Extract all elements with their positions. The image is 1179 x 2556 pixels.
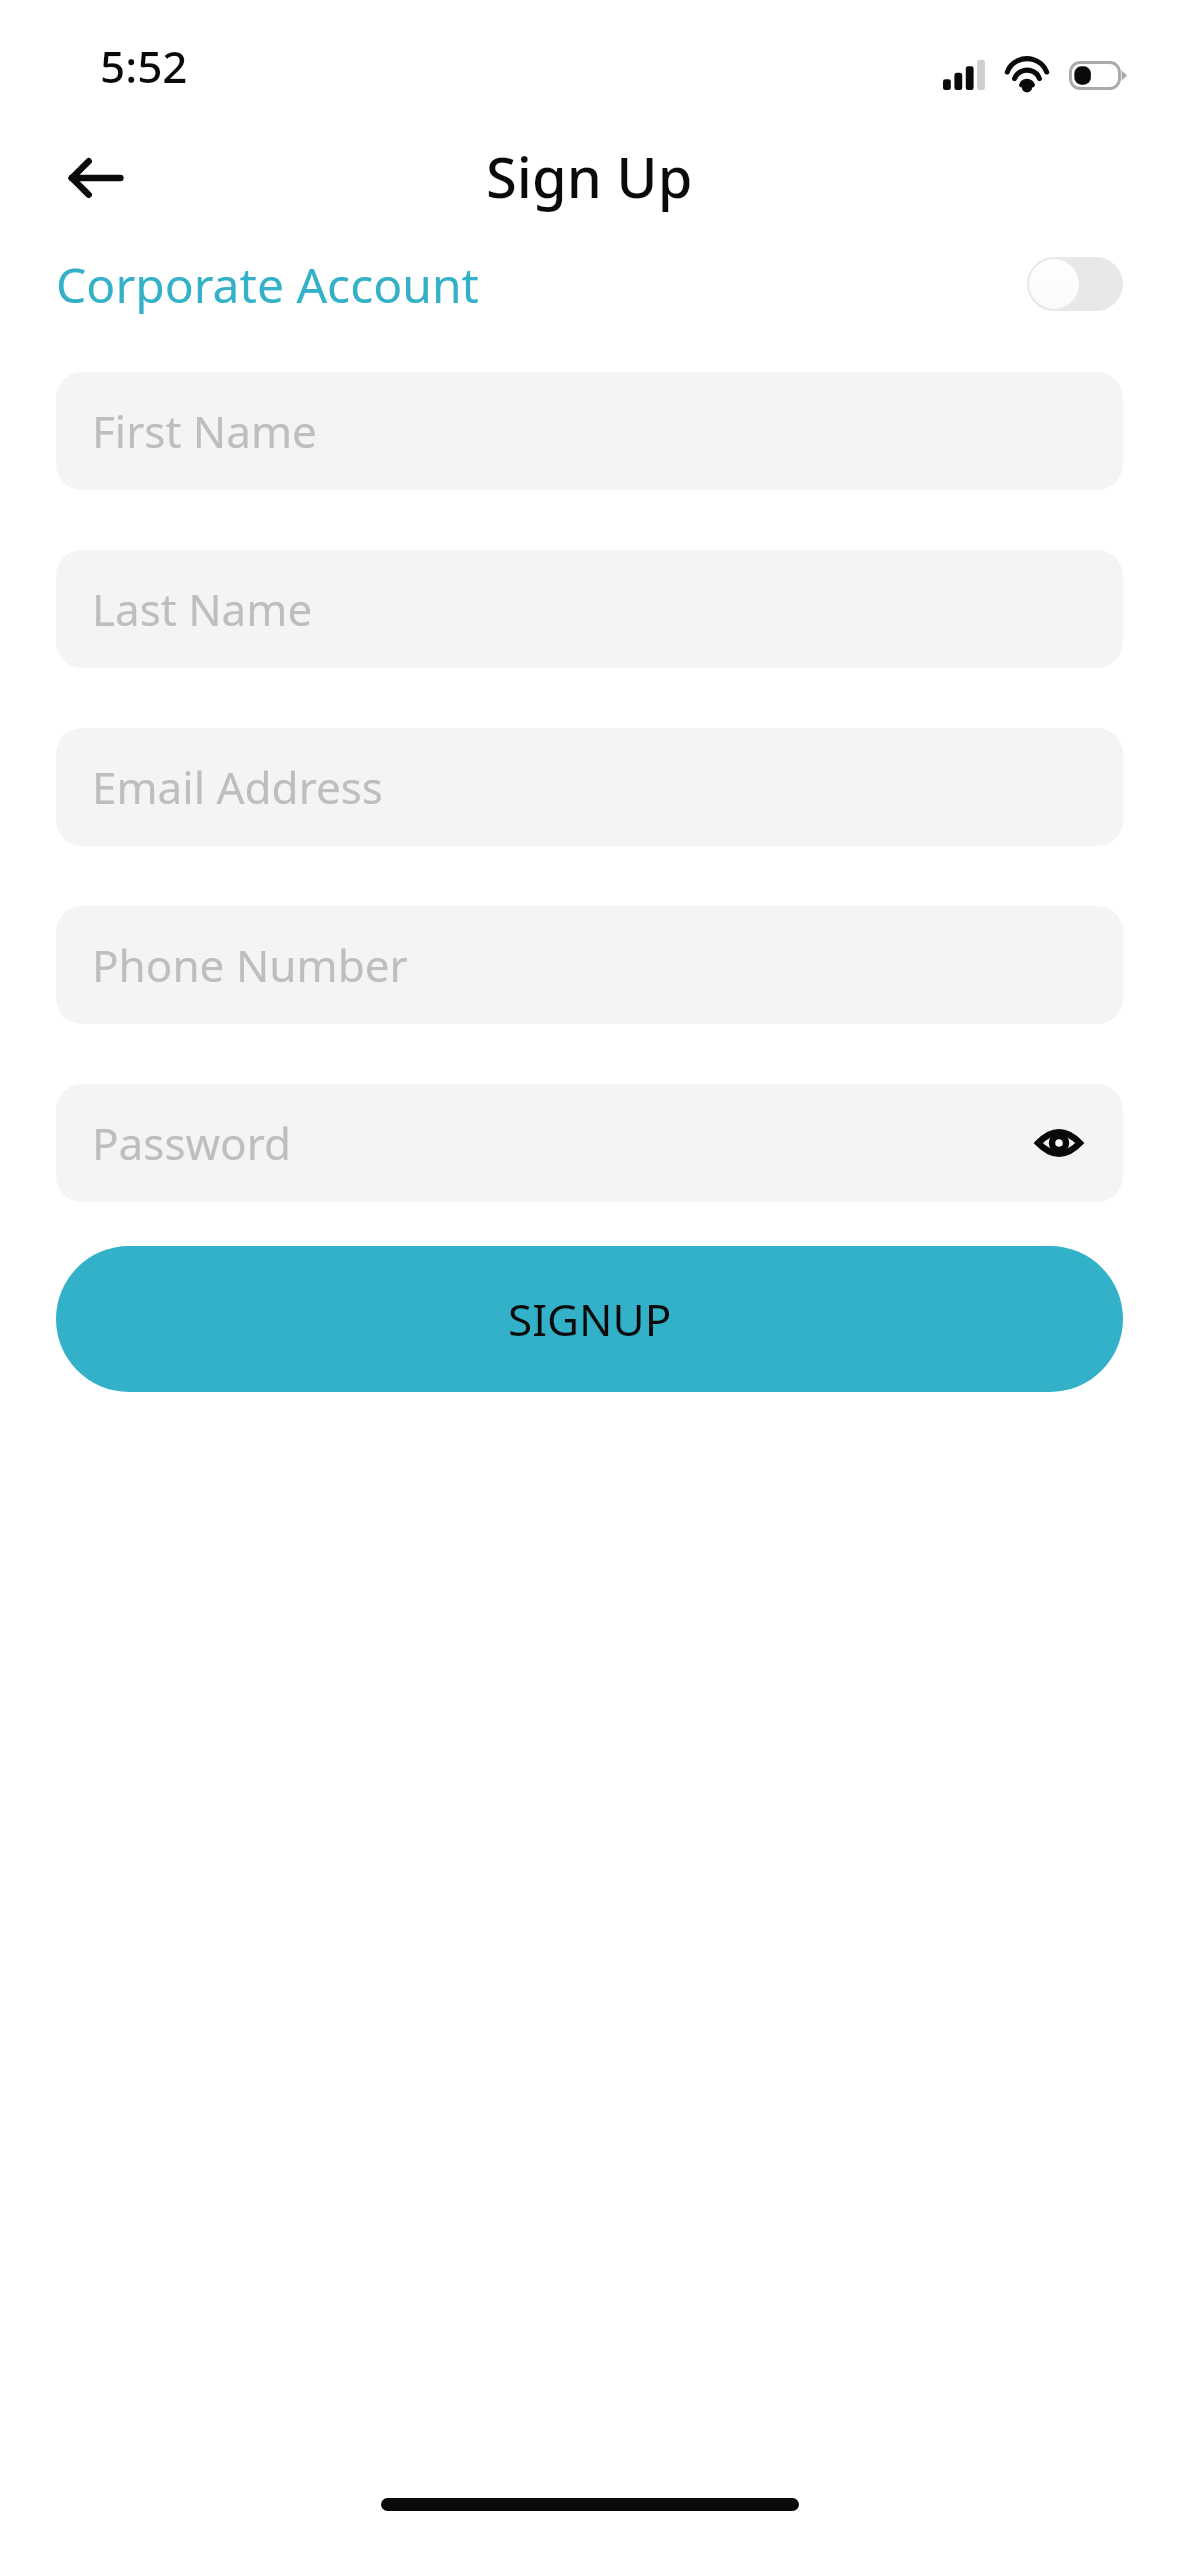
staticText: First Name — [92, 401, 317, 461]
button[interactable]: Corporate Account — [56, 238, 1123, 330]
staticText: Corporate Account — [56, 252, 479, 317]
button[interactable]: Last Name — [56, 550, 1123, 668]
button[interactable]: Password — [56, 1084, 1123, 1202]
staticText: 5:52 — [100, 36, 188, 96]
staticText: SIGNUP — [508, 1289, 672, 1349]
button[interactable]: Email Address — [56, 728, 1123, 846]
staticText: Last Name — [92, 579, 313, 639]
staticText: Phone Number — [92, 935, 408, 995]
button[interactable]: SIGNUP — [56, 1246, 1123, 1392]
button[interactable]: Phone Number — [56, 906, 1123, 1024]
button[interactable]: Back — [40, 123, 150, 233]
button[interactable]: First Name — [56, 372, 1123, 490]
button[interactable]: Corporate Account — [1027, 257, 1123, 311]
staticText: Email Address — [92, 757, 383, 817]
staticText: Password — [92, 1113, 292, 1173]
staticText: Sign Up — [486, 138, 693, 214]
button[interactable]: Show password — [1023, 1107, 1095, 1179]
